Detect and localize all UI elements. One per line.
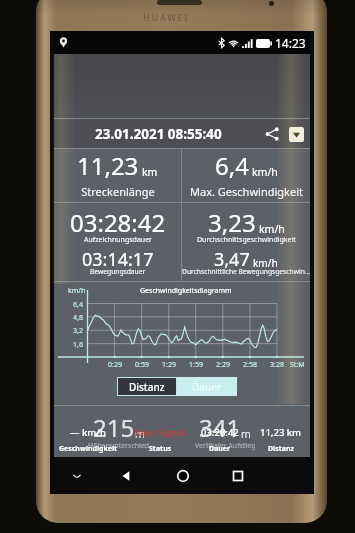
button[interactable]: Startbildschirm <box>165 457 201 494</box>
button[interactable]: Exportieren <box>289 127 304 142</box>
button[interactable]: Distanz <box>117 377 177 396</box>
staticText: 6,4 <box>73 300 83 310</box>
staticText: 3,47 <box>214 247 250 272</box>
staticText: 2:58 <box>243 360 257 370</box>
staticText: Vertikaler Aufstieg <box>195 441 256 451</box>
staticText: 14:23 <box>275 35 306 51</box>
button[interactable]: 11,23 km <box>231 426 331 439</box>
staticText: 6,4 <box>215 149 249 182</box>
staticText: 1:29 <box>162 360 176 370</box>
staticText: km/h <box>252 165 278 179</box>
staticText: 1:59 <box>189 360 203 370</box>
staticText: Streckenlänge <box>81 184 155 199</box>
staticText: m <box>241 427 251 441</box>
staticText: Max. Geschwindigkeit <box>190 184 303 199</box>
staticText: 03:28:42 <box>201 426 239 439</box>
staticText: Status <box>149 444 172 454</box>
staticText: 3,23 <box>208 206 256 239</box>
staticText: 4,8 <box>73 313 83 323</box>
button[interactable]: Navigationsleiste ausblenden <box>59 457 95 494</box>
staticText: Geschwindigkeitsdiagramm <box>140 286 232 296</box>
staticText: km <box>142 165 158 179</box>
staticText: Aufzeichnungsdauer <box>84 235 152 245</box>
staticText: Distanz <box>129 380 165 394</box>
staticText: Distanz <box>268 444 294 454</box>
staticText: — km/h <box>70 426 106 439</box>
button[interactable]: Kein Signal <box>110 426 210 439</box>
staticText: 03:14:17 <box>82 247 154 272</box>
button[interactable]: 03:28:42 <box>170 426 270 439</box>
staticText: Dauer <box>209 444 231 454</box>
staticText: 3:28 <box>270 360 284 370</box>
staticText: km/h <box>253 256 278 270</box>
staticText: St:M <box>290 360 305 370</box>
button[interactable]: Dauer <box>177 377 237 396</box>
staticText: 11,23 <box>77 149 139 182</box>
button[interactable]: Teilen <box>261 123 283 145</box>
staticText: m <box>135 427 145 441</box>
button[interactable]: Zurück <box>108 457 144 494</box>
staticText: 0:59 <box>135 360 149 370</box>
staticText: Durchschnittliche Bewegungsgeschwin… <box>182 267 311 276</box>
staticText: 341 <box>199 411 241 444</box>
staticText: 0:29 <box>108 360 122 370</box>
staticText: HUAWEI <box>143 11 190 23</box>
staticText: Bewegungsdauer <box>90 267 146 276</box>
staticText: 23.01.2021 08:55:40 <box>95 125 222 143</box>
button[interactable]: Letzte Apps <box>220 457 256 494</box>
staticText: 215 <box>93 411 135 444</box>
staticText: 11,23 km <box>260 426 302 439</box>
staticText: Höhenunterschied <box>88 441 150 451</box>
button[interactable]: — km/h <box>38 426 138 439</box>
staticText: 03:28:42 <box>70 206 166 239</box>
staticText: Geschwindigkeit <box>59 444 118 454</box>
staticText: Kein Signal <box>135 426 186 439</box>
staticText: 3,2 <box>73 326 83 336</box>
staticText: km/h <box>259 222 285 236</box>
staticText: 1,6 <box>73 340 83 350</box>
staticText: Dauer <box>192 380 222 394</box>
staticText: km/h <box>68 286 86 296</box>
staticText: 2:29 <box>216 360 230 370</box>
staticText: Durchschnittsgeschwindigkeit <box>197 235 296 245</box>
